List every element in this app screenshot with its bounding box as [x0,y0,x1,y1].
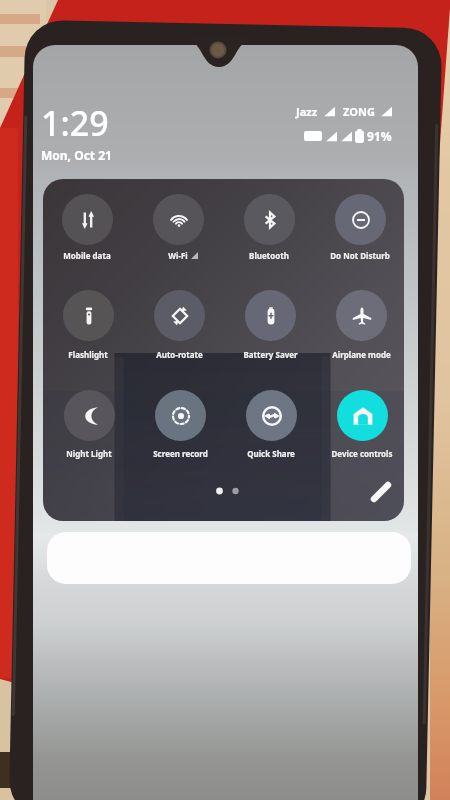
button[interactable] [43,188,132,250]
button[interactable] [226,384,316,446]
staticText: Jazz [296,104,318,119]
button[interactable] [44,384,134,446]
button[interactable]: Edit quick settings [367,478,395,506]
staticText: Auto-rotate [156,349,203,360]
button[interactable] [43,284,133,346]
staticText: Device controls [331,448,393,459]
button[interactable] [316,284,404,346]
staticText: 91% [367,128,392,144]
staticText: Airplane mode [332,349,391,360]
staticText: Screen record [153,448,208,459]
button[interactable] [134,284,224,346]
staticText: Quick Share [247,448,295,459]
staticText: Do Not Disturb [330,250,390,261]
button[interactable] [133,188,223,250]
staticText: Battery Saver [243,349,298,360]
staticText: Night Light [66,448,112,459]
staticText: Wi-Fi [168,250,188,261]
staticText: ZONG [343,104,375,119]
button[interactable] [315,188,404,250]
button[interactable] [224,188,314,250]
staticText: Flashlight [68,349,108,360]
staticText: Mobile data [63,250,111,261]
button[interactable] [225,284,315,346]
button[interactable] [317,384,404,446]
staticText: 1:29 [41,100,109,146]
staticText: Mon, Oct 21 [41,147,112,163]
button[interactable] [47,532,411,584]
button[interactable] [135,384,225,446]
staticText: Bluetooth [249,250,289,261]
